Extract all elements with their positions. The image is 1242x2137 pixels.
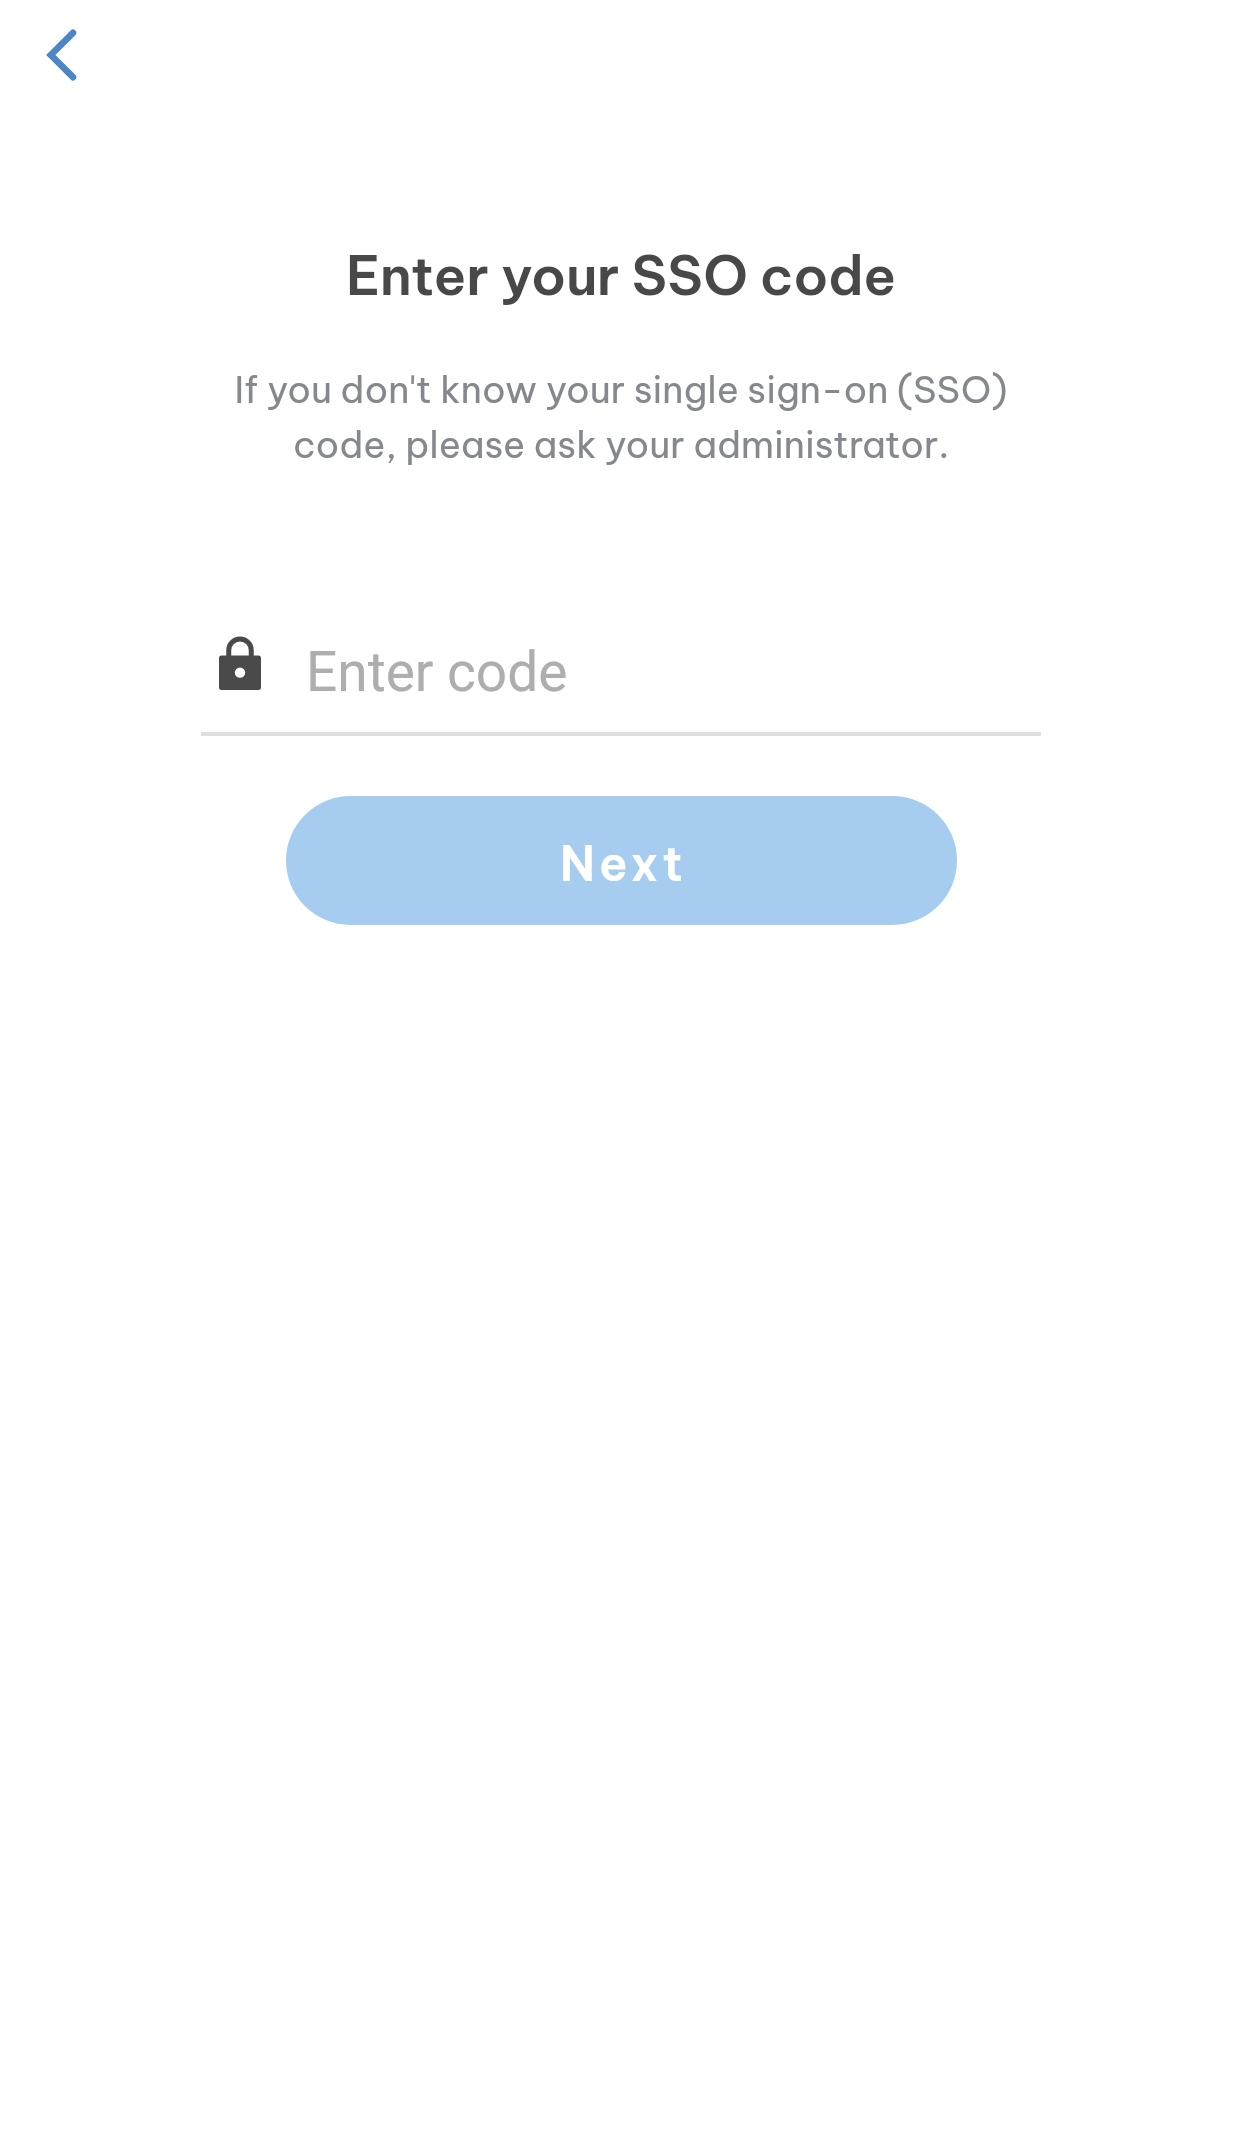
button[interactable]: Next — [286, 796, 957, 925]
staticText: Enter your SSO code — [0, 241, 1242, 309]
button[interactable]: Back — [21, 14, 103, 96]
staticText: If you don't know your single sign-on (S… — [0, 366, 1242, 468]
button[interactable] — [201, 612, 1041, 736]
staticText: Enter code — [306, 640, 568, 704]
staticText: Next — [560, 834, 688, 893]
